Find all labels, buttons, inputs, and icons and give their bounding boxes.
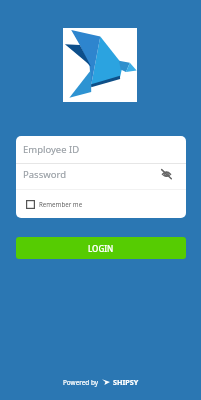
- button[interactable]: Show password: [161, 169, 172, 179]
- staticText: Employee ID: [23, 143, 80, 156]
- staticText: SHIPSY: [113, 377, 139, 387]
- staticText: Remember me: [39, 200, 83, 208]
- button[interactable]: Remember me: [16, 190, 186, 218]
- staticText: Powered by: [63, 378, 99, 387]
- staticText: Password: [23, 168, 161, 181]
- button[interactable]: Password: [16, 161, 186, 187]
- button[interactable]: LOGIN: [16, 237, 186, 259]
- button[interactable]: Employee ID: [16, 136, 186, 163]
- staticText: LOGIN: [88, 243, 114, 254]
